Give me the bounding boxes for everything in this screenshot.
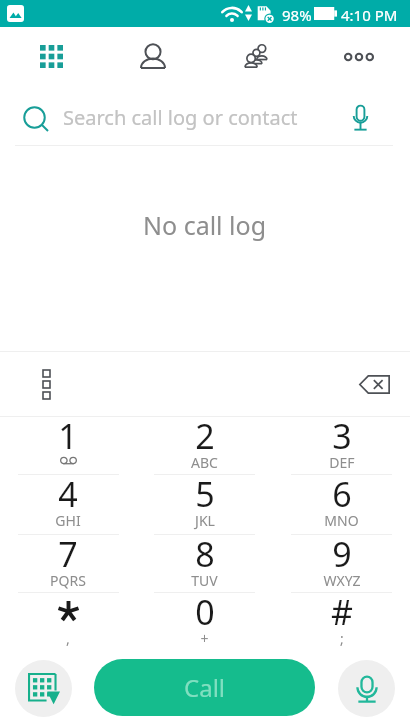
staticText: MNO — [324, 511, 359, 530]
staticText: 6 — [332, 471, 352, 517]
staticText: Search call log or contact — [63, 104, 298, 131]
button[interactable]: 8 — [136, 535, 273, 592]
staticText: GHI — [55, 511, 81, 530]
button[interactable]: 3 — [273, 417, 410, 474]
staticText: Call — [184, 671, 226, 704]
button[interactable]: Backspace — [348, 358, 400, 410]
staticText: No call log — [143, 208, 267, 242]
button[interactable]: Hide dialpad — [15, 660, 72, 717]
button[interactable]: 9 — [273, 535, 410, 592]
staticText: TUV — [191, 571, 218, 590]
staticText: + — [200, 629, 209, 648]
staticText: 9 — [332, 531, 352, 577]
staticText: PQRS — [50, 571, 86, 590]
button[interactable]: 4 — [0, 475, 136, 534]
button[interactable]: 1 — [0, 417, 136, 474]
button[interactable]: Dialpad — [0, 27, 102, 86]
button[interactable]: Voice input — [338, 660, 395, 717]
staticText: WXYZ — [323, 571, 361, 590]
button[interactable]: More options — [307, 27, 410, 86]
button[interactable]: 5 — [136, 475, 273, 534]
button[interactable]: Contacts — [102, 27, 204, 86]
staticText: 8 — [195, 531, 215, 577]
staticText: 5 — [195, 471, 215, 517]
staticText: ; — [340, 629, 344, 648]
button[interactable]: 0 — [136, 593, 273, 653]
staticText: # — [331, 589, 353, 635]
button[interactable]: Call — [94, 659, 315, 716]
staticText: 1 — [58, 413, 78, 459]
staticText: DEF — [329, 453, 355, 472]
staticText: , — [66, 629, 70, 648]
staticText: ABC — [191, 453, 218, 472]
button[interactable]: 2 — [136, 417, 273, 474]
button[interactable]: , — [0, 593, 136, 653]
staticText: 2 — [195, 413, 215, 459]
staticText: 98% — [282, 5, 312, 25]
staticText: 7 — [58, 531, 78, 577]
staticText: 4:10 PM — [341, 5, 398, 25]
staticText: JKL — [195, 511, 215, 530]
button[interactable]: Groups — [204, 27, 307, 86]
button[interactable]: Search call log or contact — [0, 86, 410, 145]
button[interactable]: 6 — [273, 475, 410, 534]
staticText: 0 — [195, 589, 215, 635]
staticText: 4 — [58, 471, 78, 517]
button[interactable]: Voice search — [338, 95, 382, 139]
button[interactable]: Dial options — [24, 362, 68, 406]
button[interactable]: 7 — [0, 535, 136, 592]
button[interactable]: # — [273, 593, 410, 653]
staticText: 3 — [332, 413, 352, 459]
